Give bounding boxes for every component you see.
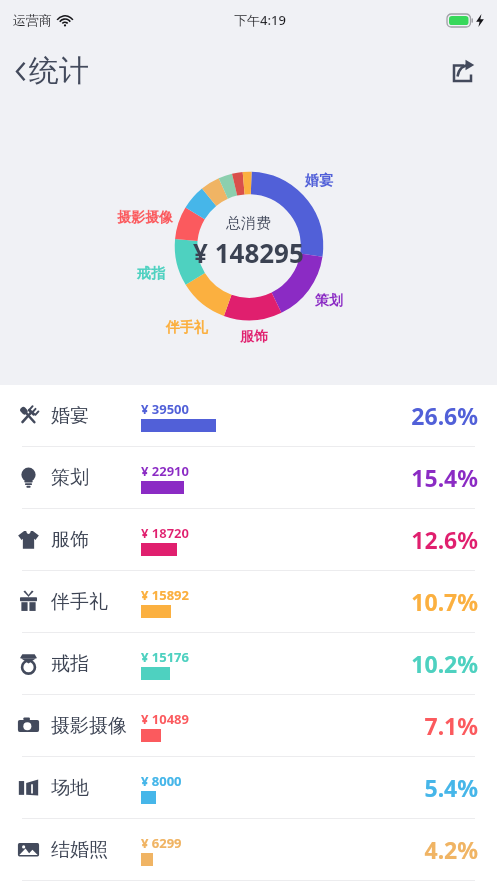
staticText: 婚宴	[51, 404, 89, 428]
staticText: 12.6%	[411, 524, 478, 555]
staticText: 结婚照	[51, 838, 108, 862]
staticText: 26.6%	[411, 400, 478, 431]
staticText: 戒指	[51, 652, 89, 676]
staticText: 伴手礼	[166, 319, 208, 337]
staticText: 摄影摄像	[117, 209, 173, 227]
staticText: ¥ 15176	[141, 648, 189, 666]
button[interactable]: 婚宴	[0, 385, 497, 446]
staticText: 伴手礼	[51, 590, 108, 614]
button[interactable]: Share	[444, 53, 480, 89]
button[interactable]: 伴手礼	[0, 571, 497, 632]
staticText: ¥ 10489	[141, 710, 189, 728]
button[interactable]: 服饰	[0, 509, 497, 570]
staticText: 策划	[315, 292, 343, 310]
staticText: 服饰	[240, 328, 268, 346]
staticText: 10.2%	[411, 648, 478, 679]
staticText: 戒指	[137, 265, 165, 283]
staticText: ¥ 18720	[141, 524, 189, 542]
staticText: 策划	[51, 466, 89, 490]
staticText: 统计	[29, 52, 89, 90]
staticText: ¥ 15892	[141, 586, 189, 604]
staticText: 摄影摄像	[51, 714, 127, 738]
staticText: 10.7%	[411, 586, 478, 617]
button[interactable]: 统计	[12, 46, 97, 96]
staticText: ¥ 8000	[141, 772, 182, 790]
button[interactable]: 摄影摄像	[0, 695, 497, 756]
staticText: 总消费	[226, 214, 271, 233]
staticText: ¥ 39500	[141, 400, 189, 418]
staticText: 4.2%	[424, 834, 478, 865]
staticText: ¥ 6299	[141, 834, 182, 852]
staticText: 场地	[51, 776, 89, 800]
button[interactable]: 戒指	[0, 633, 497, 694]
staticText: 运营商	[13, 12, 52, 28]
staticText: 15.4%	[411, 462, 478, 493]
button[interactable]: 结婚照	[0, 819, 497, 880]
button[interactable]: 场地	[0, 757, 497, 818]
staticText: ¥ 22910	[141, 462, 189, 480]
staticText: 5.4%	[424, 772, 478, 803]
button[interactable]: 策划	[0, 447, 497, 508]
staticText: 婚宴	[305, 172, 333, 190]
staticText: 下午4:19	[234, 11, 286, 29]
staticText: ¥ 148295	[193, 235, 304, 270]
staticText: 7.1%	[424, 710, 478, 741]
staticText: 服饰	[51, 528, 89, 552]
